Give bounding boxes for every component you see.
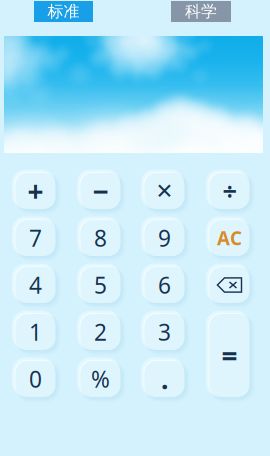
staticText: 9: [158, 223, 171, 253]
button[interactable]: ÷: [204, 168, 254, 214]
button[interactable]: 2: [75, 309, 125, 355]
button[interactable]: AC: [204, 215, 254, 261]
button[interactable]: ✕: [139, 168, 189, 214]
staticText: 科学: [185, 2, 217, 21]
button[interactable]: %: [75, 356, 125, 402]
staticText: ✕: [155, 179, 173, 203]
button[interactable]: 5: [75, 262, 125, 308]
staticText: 2: [94, 317, 107, 347]
staticText: .: [161, 361, 168, 397]
staticText: 标准: [47, 2, 79, 21]
button[interactable]: 标准: [34, 1, 93, 22]
staticText: 6: [158, 270, 171, 300]
button[interactable]: [204, 262, 254, 308]
staticText: +: [27, 172, 43, 210]
button[interactable]: 9: [139, 215, 189, 261]
button[interactable]: 科学: [171, 1, 231, 22]
button[interactable]: 1: [10, 309, 60, 355]
button[interactable]: .: [139, 356, 189, 402]
staticText: 4: [29, 270, 42, 300]
button[interactable]: +: [10, 168, 60, 214]
button[interactable]: −: [75, 168, 125, 214]
staticText: 0: [29, 364, 42, 394]
button[interactable]: =: [204, 309, 254, 402]
button[interactable]: 0: [10, 356, 60, 402]
staticText: ÷: [222, 174, 236, 208]
button[interactable]: 6: [139, 262, 189, 308]
button[interactable]: 4: [10, 262, 60, 308]
staticText: 3: [158, 317, 171, 347]
staticText: 8: [94, 223, 107, 253]
button[interactable]: 7: [10, 215, 60, 261]
button[interactable]: 3: [139, 309, 189, 355]
staticText: 1: [29, 317, 42, 347]
staticText: −: [92, 172, 108, 210]
button[interactable]: 8: [75, 215, 125, 261]
staticText: %: [91, 364, 110, 394]
staticText: 7: [29, 223, 42, 253]
staticText: AC: [217, 226, 242, 250]
staticText: =: [221, 337, 237, 374]
staticText: 5: [94, 270, 107, 300]
